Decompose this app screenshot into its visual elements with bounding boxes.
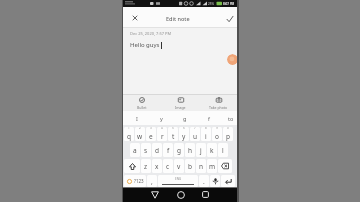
button[interactable]: . [199, 175, 209, 187]
staticText: 8:07 PM [223, 2, 235, 6]
staticText: t [172, 132, 175, 141]
button[interactable] [124, 159, 140, 173]
staticText: z [144, 162, 148, 171]
button[interactable]: j [196, 143, 206, 157]
staticText: u [193, 132, 198, 141]
staticText: g [177, 146, 181, 155]
staticText: 25% [208, 2, 214, 6]
button[interactable]: 9 [212, 127, 222, 141]
staticText: w [137, 132, 143, 141]
staticText: n [199, 162, 204, 171]
button[interactable]: 6 [179, 127, 189, 141]
button[interactable]: ENG [158, 175, 198, 187]
staticText: j [200, 146, 202, 155]
button[interactable]: ?123 [124, 175, 146, 187]
staticText: e [149, 132, 153, 141]
staticText: h [188, 146, 193, 155]
staticText: a [133, 146, 137, 155]
button[interactable]: Bullet [123, 95, 161, 111]
staticText: Take photo [209, 105, 228, 110]
staticText: o [215, 132, 219, 141]
staticText: p [226, 132, 230, 141]
button[interactable]: f [163, 143, 173, 157]
button[interactable]: 2 [135, 127, 145, 141]
staticText: 4 [161, 127, 163, 130]
button[interactable]: a [130, 143, 140, 157]
button[interactable]: s [141, 143, 151, 157]
button[interactable]: I [131, 111, 143, 125]
button[interactable] [130, 13, 140, 23]
staticText: b [188, 162, 192, 171]
button[interactable]: Image [161, 95, 199, 111]
staticText: , [151, 177, 153, 186]
button[interactable]: z [141, 159, 151, 173]
staticText: 8 [205, 127, 207, 130]
button[interactable]: y [155, 111, 167, 125]
button[interactable]: 0 [223, 127, 233, 141]
button[interactable]: 4 [157, 127, 167, 141]
staticText: r [161, 132, 164, 141]
staticText: i [205, 132, 207, 141]
staticText: s [144, 146, 148, 155]
button[interactable]: v [174, 159, 184, 173]
button[interactable]: to [225, 111, 237, 125]
button[interactable]: n [196, 159, 206, 173]
staticText: Bullet [137, 105, 147, 110]
staticText: Edit note [166, 15, 190, 22]
staticText: f [167, 146, 170, 155]
staticText: I [136, 115, 138, 122]
button[interactable]: 7 [190, 127, 200, 141]
staticText: v [177, 162, 181, 171]
button[interactable]: 5 [168, 127, 178, 141]
staticText: m [209, 162, 216, 171]
button[interactable] [224, 13, 235, 24]
staticText: to [228, 115, 234, 122]
button[interactable]: f [203, 111, 215, 125]
button[interactable] [227, 54, 238, 65]
staticText: . [203, 177, 205, 186]
button[interactable]: g [179, 111, 191, 125]
staticText: l [222, 146, 224, 155]
button[interactable]: 1 [124, 127, 134, 141]
button[interactable]: k [207, 143, 217, 157]
button[interactable] [175, 189, 186, 200]
button[interactable]: Take photo [199, 95, 237, 111]
button[interactable]: , [147, 175, 157, 187]
staticText: 7 [194, 127, 196, 130]
button[interactable]: c [163, 159, 173, 173]
staticText: Image [175, 105, 186, 110]
staticText: 5 [172, 127, 174, 130]
staticText: q [127, 132, 131, 141]
staticText: 0 [227, 127, 229, 130]
button[interactable] [218, 159, 232, 173]
button[interactable]: g [174, 143, 184, 157]
staticText: 6 [183, 127, 185, 130]
staticText: x [155, 162, 159, 171]
staticText: ?123 [134, 178, 144, 184]
button[interactable]: 8 [201, 127, 211, 141]
staticText: ENG [175, 177, 182, 181]
button[interactable] [210, 175, 220, 187]
button[interactable]: d [152, 143, 162, 157]
button[interactable] [200, 189, 211, 200]
staticText: y [182, 132, 186, 141]
button[interactable]: b [185, 159, 195, 173]
button[interactable] [221, 175, 235, 187]
staticText: g [183, 115, 187, 122]
button[interactable]: 3 [146, 127, 156, 141]
staticText: 9 [216, 127, 218, 130]
staticText: y [160, 115, 163, 122]
button[interactable]: m [207, 159, 217, 173]
button[interactable]: l [218, 143, 228, 157]
button[interactable]: x [152, 159, 162, 173]
staticText: d [155, 146, 159, 155]
button[interactable] [149, 189, 160, 200]
staticText: c [166, 162, 170, 171]
staticText: Dec 25, 2020, 7:57 PM [130, 31, 172, 36]
staticText: 2 [139, 127, 141, 130]
staticText: Hello guys [130, 41, 160, 49]
staticText: 1 [128, 127, 130, 130]
button[interactable]: h [185, 143, 195, 157]
staticText: f [208, 115, 210, 122]
staticText: k [210, 146, 214, 155]
